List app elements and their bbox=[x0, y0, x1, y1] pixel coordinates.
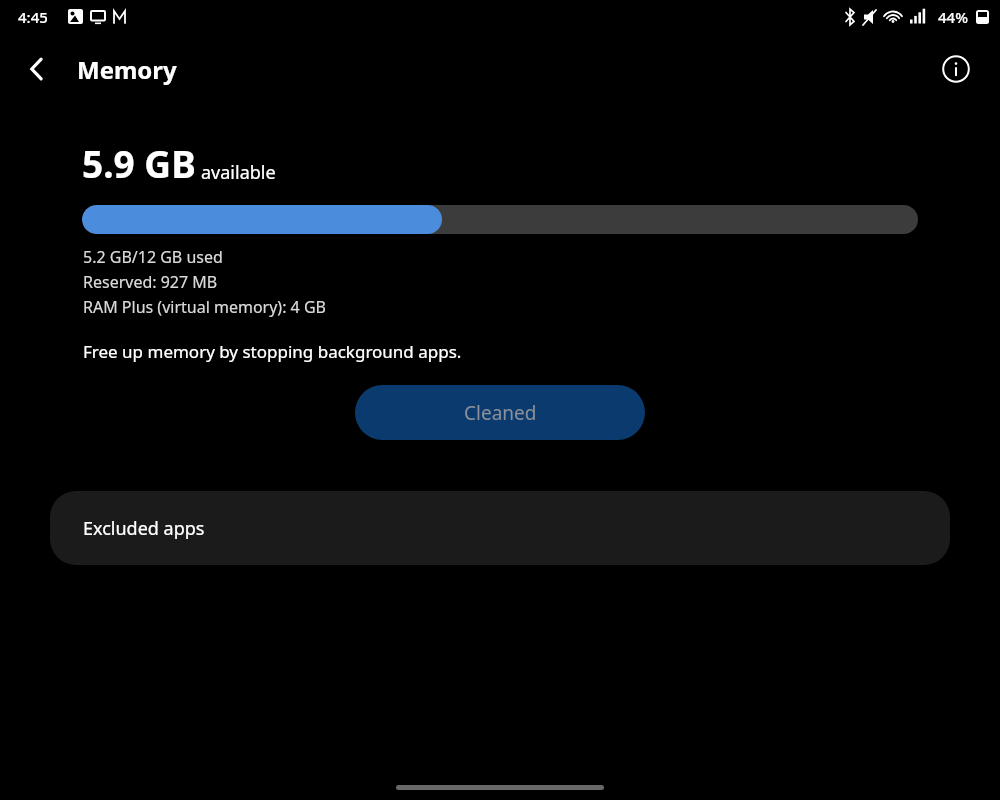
button[interactable]: Back bbox=[14, 46, 60, 92]
button[interactable]: Cleaned bbox=[355, 385, 645, 440]
staticText: RAM Plus (virtual memory): 4 GB bbox=[83, 296, 326, 318]
staticText: 44% bbox=[938, 7, 968, 27]
staticText: Cleaned bbox=[464, 400, 537, 426]
staticText: Memory bbox=[77, 53, 177, 86]
staticText: 5.2 GB/12 GB used bbox=[83, 246, 223, 268]
staticText: Excluded apps bbox=[83, 516, 205, 541]
staticText: available bbox=[201, 160, 276, 185]
staticText: 4:45 bbox=[18, 7, 48, 27]
staticText: Reserved: 927 MB bbox=[83, 271, 218, 293]
staticText: 5.9 GB bbox=[82, 138, 196, 188]
staticText: Free up memory by stopping background ap… bbox=[83, 340, 462, 363]
button[interactable]: Excluded apps bbox=[50, 491, 950, 565]
button[interactable]: Information bbox=[934, 47, 978, 91]
